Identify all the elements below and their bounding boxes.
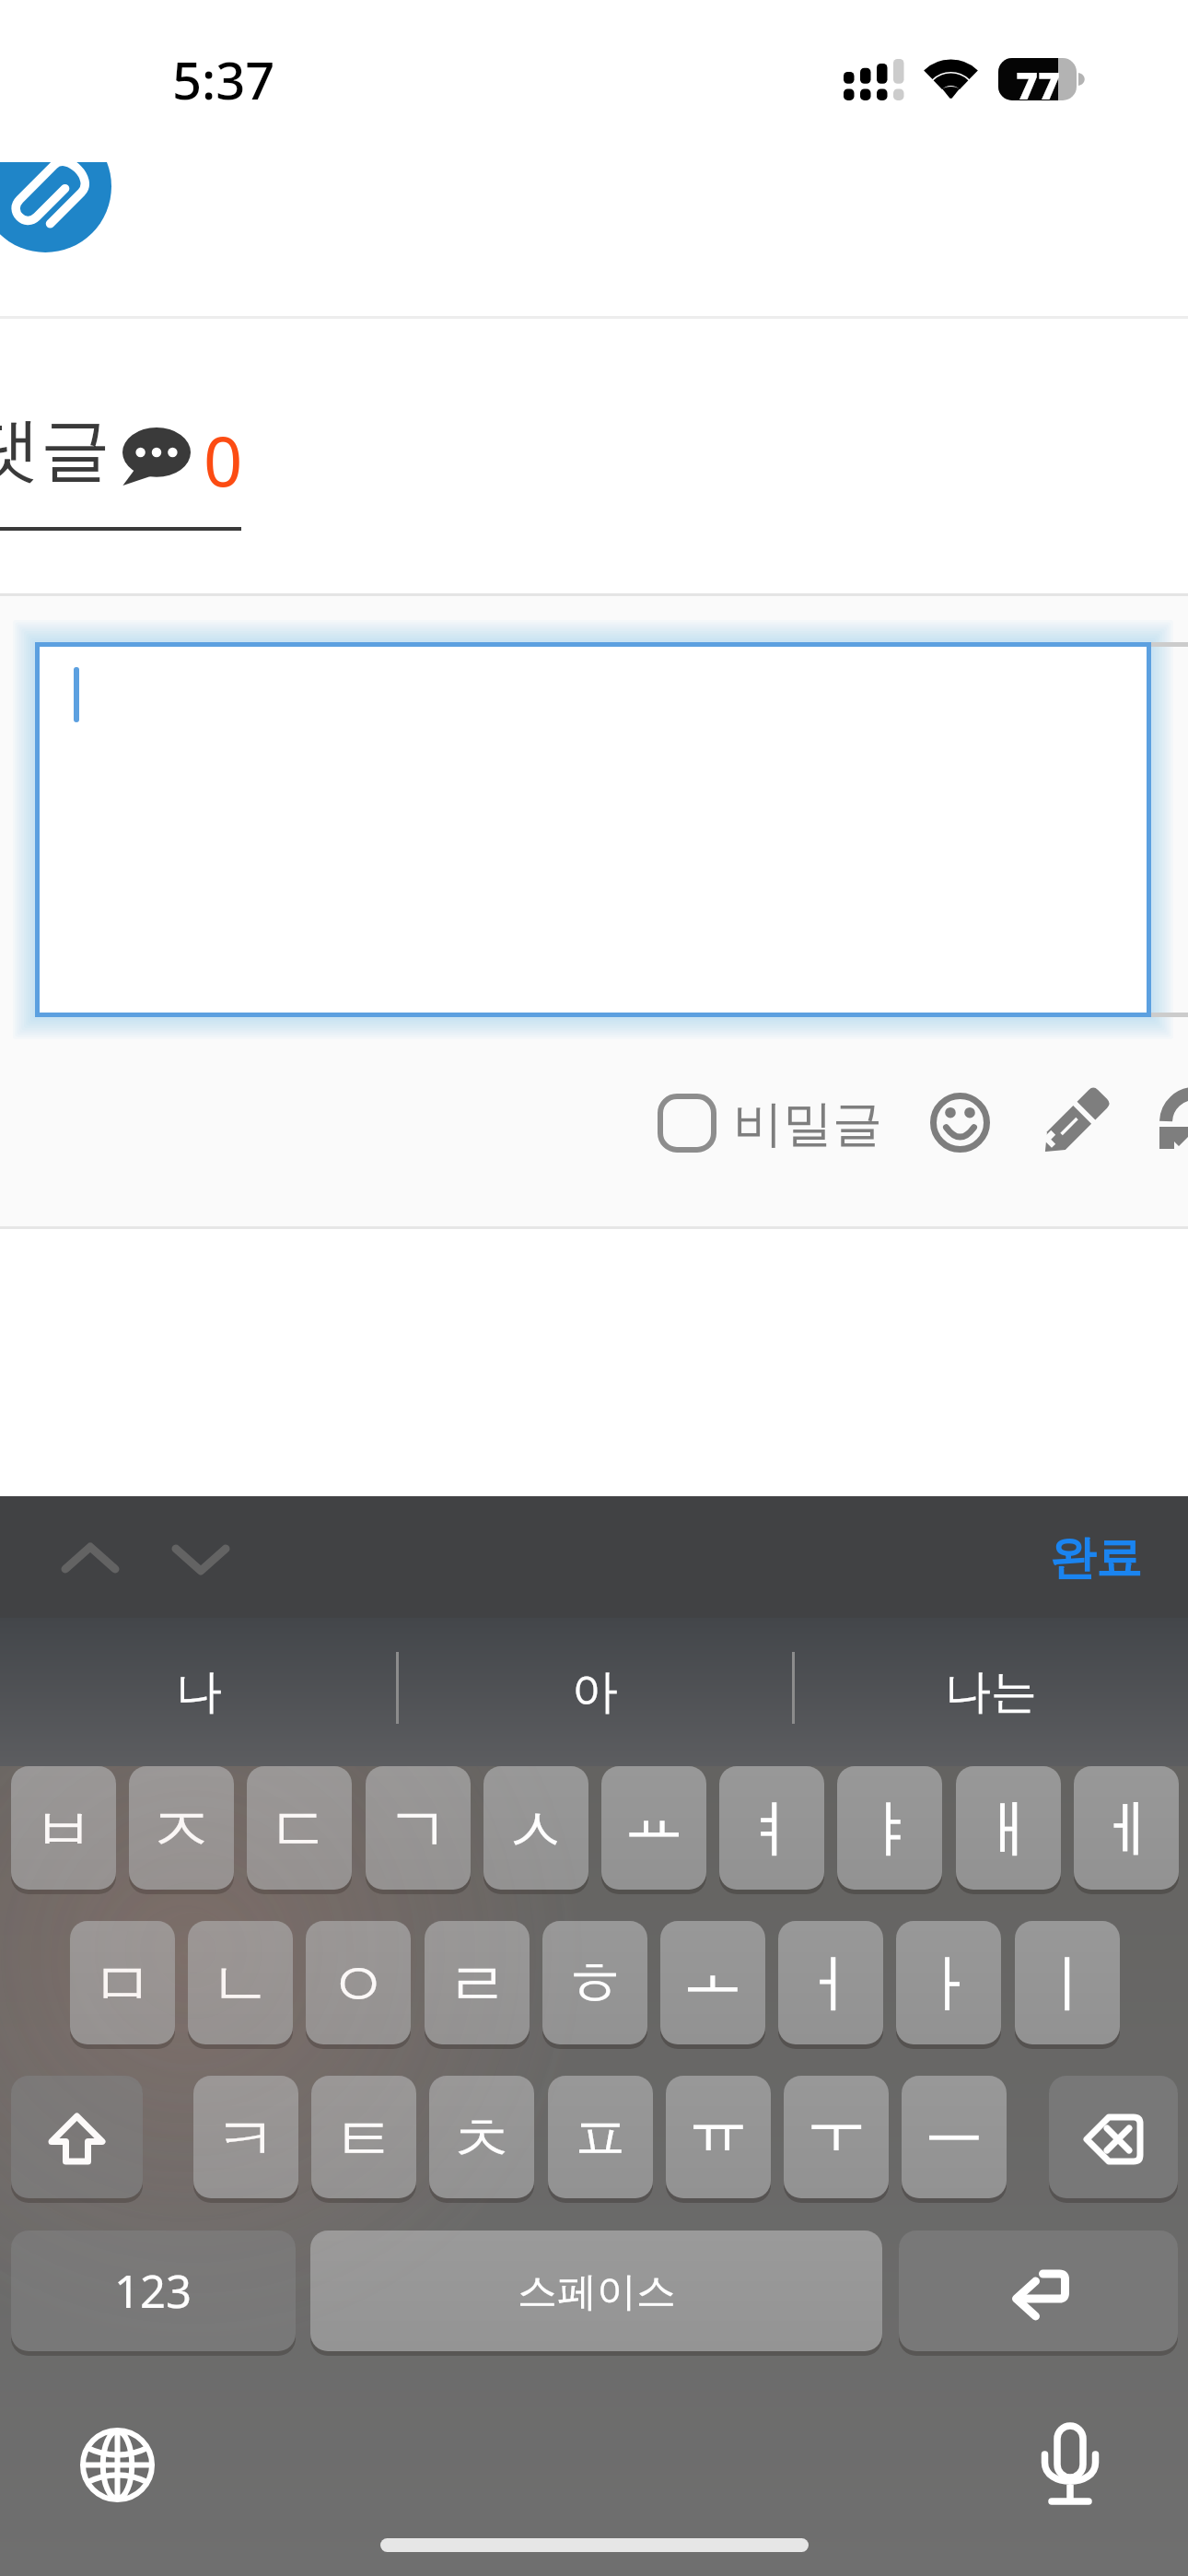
button[interactable]: Secret comment [658, 1094, 716, 1153]
button[interactable]: Write [1042, 1092, 1105, 1154]
button[interactable]: ㅍ [548, 2076, 653, 2198]
button[interactable]: 123 [11, 2231, 296, 2351]
staticText: ㅍ [569, 2101, 632, 2180]
button[interactable]: ㅁ [70, 1921, 175, 2044]
button[interactable]: Change keyboard [80, 2428, 155, 2502]
button[interactable]: ㄴ [188, 1921, 293, 2044]
button[interactable]: ㅔ [1074, 1766, 1179, 1890]
button[interactable]: ㅎ [542, 1921, 647, 2044]
button[interactable]: ㅓ [778, 1921, 883, 2044]
button[interactable]: ㄱ [366, 1766, 471, 1890]
button[interactable]: ㅏ [896, 1921, 1001, 2044]
staticText: ㅔ [1095, 1791, 1158, 1870]
staticText: ㅎ [564, 1945, 626, 2024]
button[interactable]: 나 [33, 1620, 365, 1763]
staticText: ㅛ [623, 1778, 685, 1857]
staticText: ㅠ [687, 2086, 750, 2165]
staticText: ㅈ [150, 1791, 213, 1870]
staticText: ㄴ [209, 1946, 272, 2025]
staticText: ㅂ [32, 1791, 95, 1870]
staticText: ㅇ [327, 1946, 390, 2025]
button[interactable]: ㅊ [429, 2076, 534, 2198]
staticText: ㄷ [268, 1791, 331, 1870]
button[interactable]: Attach file [0, 162, 115, 254]
staticText: 나는 [945, 1663, 1037, 1721]
staticText: 5:37 [172, 44, 275, 114]
staticText: ㅅ [505, 1792, 567, 1871]
button[interactable]: Previous field [60, 1541, 121, 1582]
button[interactable]: ㅐ [956, 1766, 1061, 1890]
staticText: ㅡ [923, 2083, 985, 2162]
staticText: 123 [114, 2260, 192, 2322]
button[interactable]: ㄷ [247, 1766, 352, 1890]
button[interactable]: ㅈ [129, 1766, 234, 1890]
staticText: ㅏ [917, 1946, 980, 2025]
button[interactable]: 완료 [1013, 1496, 1188, 1618]
button[interactable]: ㅜ [784, 2076, 889, 2198]
staticText: ㅁ [91, 1946, 154, 2025]
button[interactable]: ㅡ [902, 2076, 1007, 2198]
button[interactable]: Comment input [35, 642, 1151, 1017]
button[interactable]: ㅣ [1015, 1921, 1120, 2044]
button[interactable]: 아 [429, 1620, 761, 1763]
button[interactable]: ㅌ [311, 2076, 416, 2198]
button[interactable]: Refresh [1153, 1092, 1188, 1165]
button[interactable]: ㅇ [306, 1921, 411, 2044]
staticText: ㅕ [740, 1791, 803, 1870]
button[interactable]: ㅅ [483, 1766, 588, 1890]
button[interactable]: ㅠ [666, 2076, 771, 2198]
staticText: ㅣ [1036, 1946, 1099, 2025]
button[interactable]: ㅑ [837, 1766, 942, 1890]
button[interactable]: ㅗ [660, 1921, 765, 2044]
staticText: ㅑ [858, 1791, 921, 1870]
button[interactable]: ㅛ [601, 1766, 706, 1890]
staticText: 77 [1016, 59, 1061, 111]
button[interactable]: ㄹ [425, 1921, 530, 2044]
button[interactable]: Emoji [930, 1093, 990, 1153]
staticText: ㅐ [977, 1791, 1040, 1870]
staticText: 댓글 [0, 406, 111, 495]
staticText: 스페이스 [518, 2267, 676, 2317]
staticText: 나 [176, 1663, 222, 1721]
staticText: 비밀글 [733, 1093, 882, 1155]
button[interactable]: Dictation [1042, 2424, 1099, 2503]
button[interactable]: 스페이스 [310, 2231, 882, 2351]
staticText: ㅊ [450, 2102, 513, 2181]
button[interactable]: ㅋ [193, 2076, 298, 2198]
staticText: ㅓ [799, 1946, 862, 2025]
button[interactable]: ㅂ [11, 1766, 116, 1890]
staticText: 완료 [1050, 1529, 1142, 1587]
staticText: ㅌ [332, 2101, 395, 2180]
staticText: ㄹ [446, 1946, 508, 2025]
staticText: 0 [204, 414, 243, 507]
button[interactable]: 나는 [825, 1620, 1157, 1763]
staticText: ㅗ [681, 1933, 744, 2012]
button[interactable]: ㅕ [719, 1766, 824, 1890]
staticText: 아 [572, 1663, 618, 1721]
staticText: ㅋ [215, 2101, 277, 2180]
button[interactable]: Shift [11, 2076, 143, 2198]
staticText: ㄱ [387, 1791, 449, 1870]
button[interactable]: Backspace [1049, 2076, 1178, 2198]
staticText: ㅜ [805, 2086, 868, 2165]
button[interactable]: Next field [170, 1541, 231, 1582]
button[interactable]: Return [899, 2231, 1178, 2351]
